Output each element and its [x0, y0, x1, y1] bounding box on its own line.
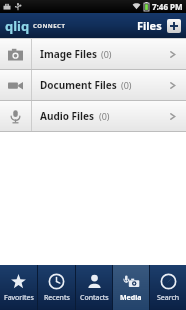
- staticText: Media: [120, 293, 142, 303]
- staticText: Recents: [44, 293, 70, 303]
- button[interactable]: Media: [113, 265, 149, 310]
- staticText: Files: [137, 18, 162, 33]
- staticText: Document Files: [40, 78, 117, 92]
- staticText: CONNECT: [33, 22, 66, 30]
- staticText: Search: [157, 293, 180, 303]
- staticText: Audio Files: [40, 109, 95, 123]
- staticText: (0): [121, 79, 132, 91]
- button[interactable]: Recents: [38, 265, 75, 310]
- staticText: qliq: [5, 17, 30, 35]
- staticText: (0): [99, 110, 110, 122]
- button[interactable]: Favorites: [0, 265, 37, 310]
- staticText: Favorites: [4, 293, 34, 303]
- button[interactable]: Add file: [167, 19, 181, 33]
- staticText: Image Files: [40, 47, 97, 61]
- button[interactable]: Search: [150, 265, 186, 310]
- button[interactable]: Contacts: [76, 265, 112, 310]
- button[interactable]: Document Files: [0, 70, 186, 100]
- button[interactable]: Image Files: [0, 39, 186, 69]
- staticText: Contacts: [80, 293, 109, 303]
- button[interactable]: Audio Files: [0, 101, 186, 131]
- staticText: (0): [101, 48, 112, 60]
- staticText: 7:46 PM: [152, 1, 183, 12]
